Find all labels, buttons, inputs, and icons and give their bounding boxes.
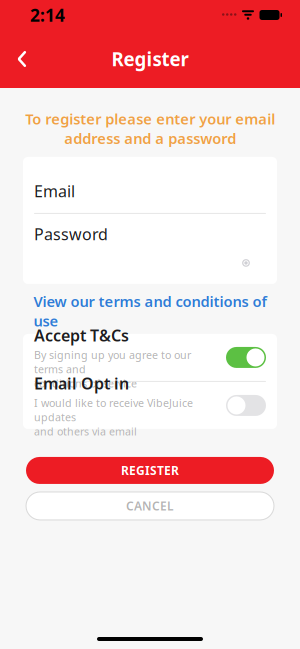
button[interactable]: Accept T&Cs (23, 334, 277, 381)
button[interactable]: Password (23, 214, 277, 272)
staticText: To register please enter your email addr… (25, 109, 275, 148)
staticText: 2:14 (30, 3, 65, 26)
staticText: Email (34, 180, 75, 201)
button[interactable]: Email Opt in (23, 382, 277, 429)
button[interactable]: Back (0, 37, 44, 81)
staticText: REGISTER (121, 462, 179, 478)
button[interactable]: Email (23, 169, 277, 214)
button[interactable]: CANCEL (26, 492, 274, 520)
staticText: View our terms and conditions of use (33, 291, 266, 330)
button[interactable]: REGISTER (26, 457, 274, 484)
staticText: I would like to receive VibeJuice update… (34, 396, 193, 438)
staticText: By signing up you agree to our terms and… (34, 348, 191, 390)
staticText: Accept T&Cs (34, 325, 129, 346)
staticText: CANCEL (126, 498, 174, 514)
staticText: Password (34, 223, 108, 244)
button[interactable]: View our terms and conditions of use (23, 303, 277, 319)
staticText: Email Opt in (34, 373, 129, 394)
staticText: Register (111, 47, 188, 71)
